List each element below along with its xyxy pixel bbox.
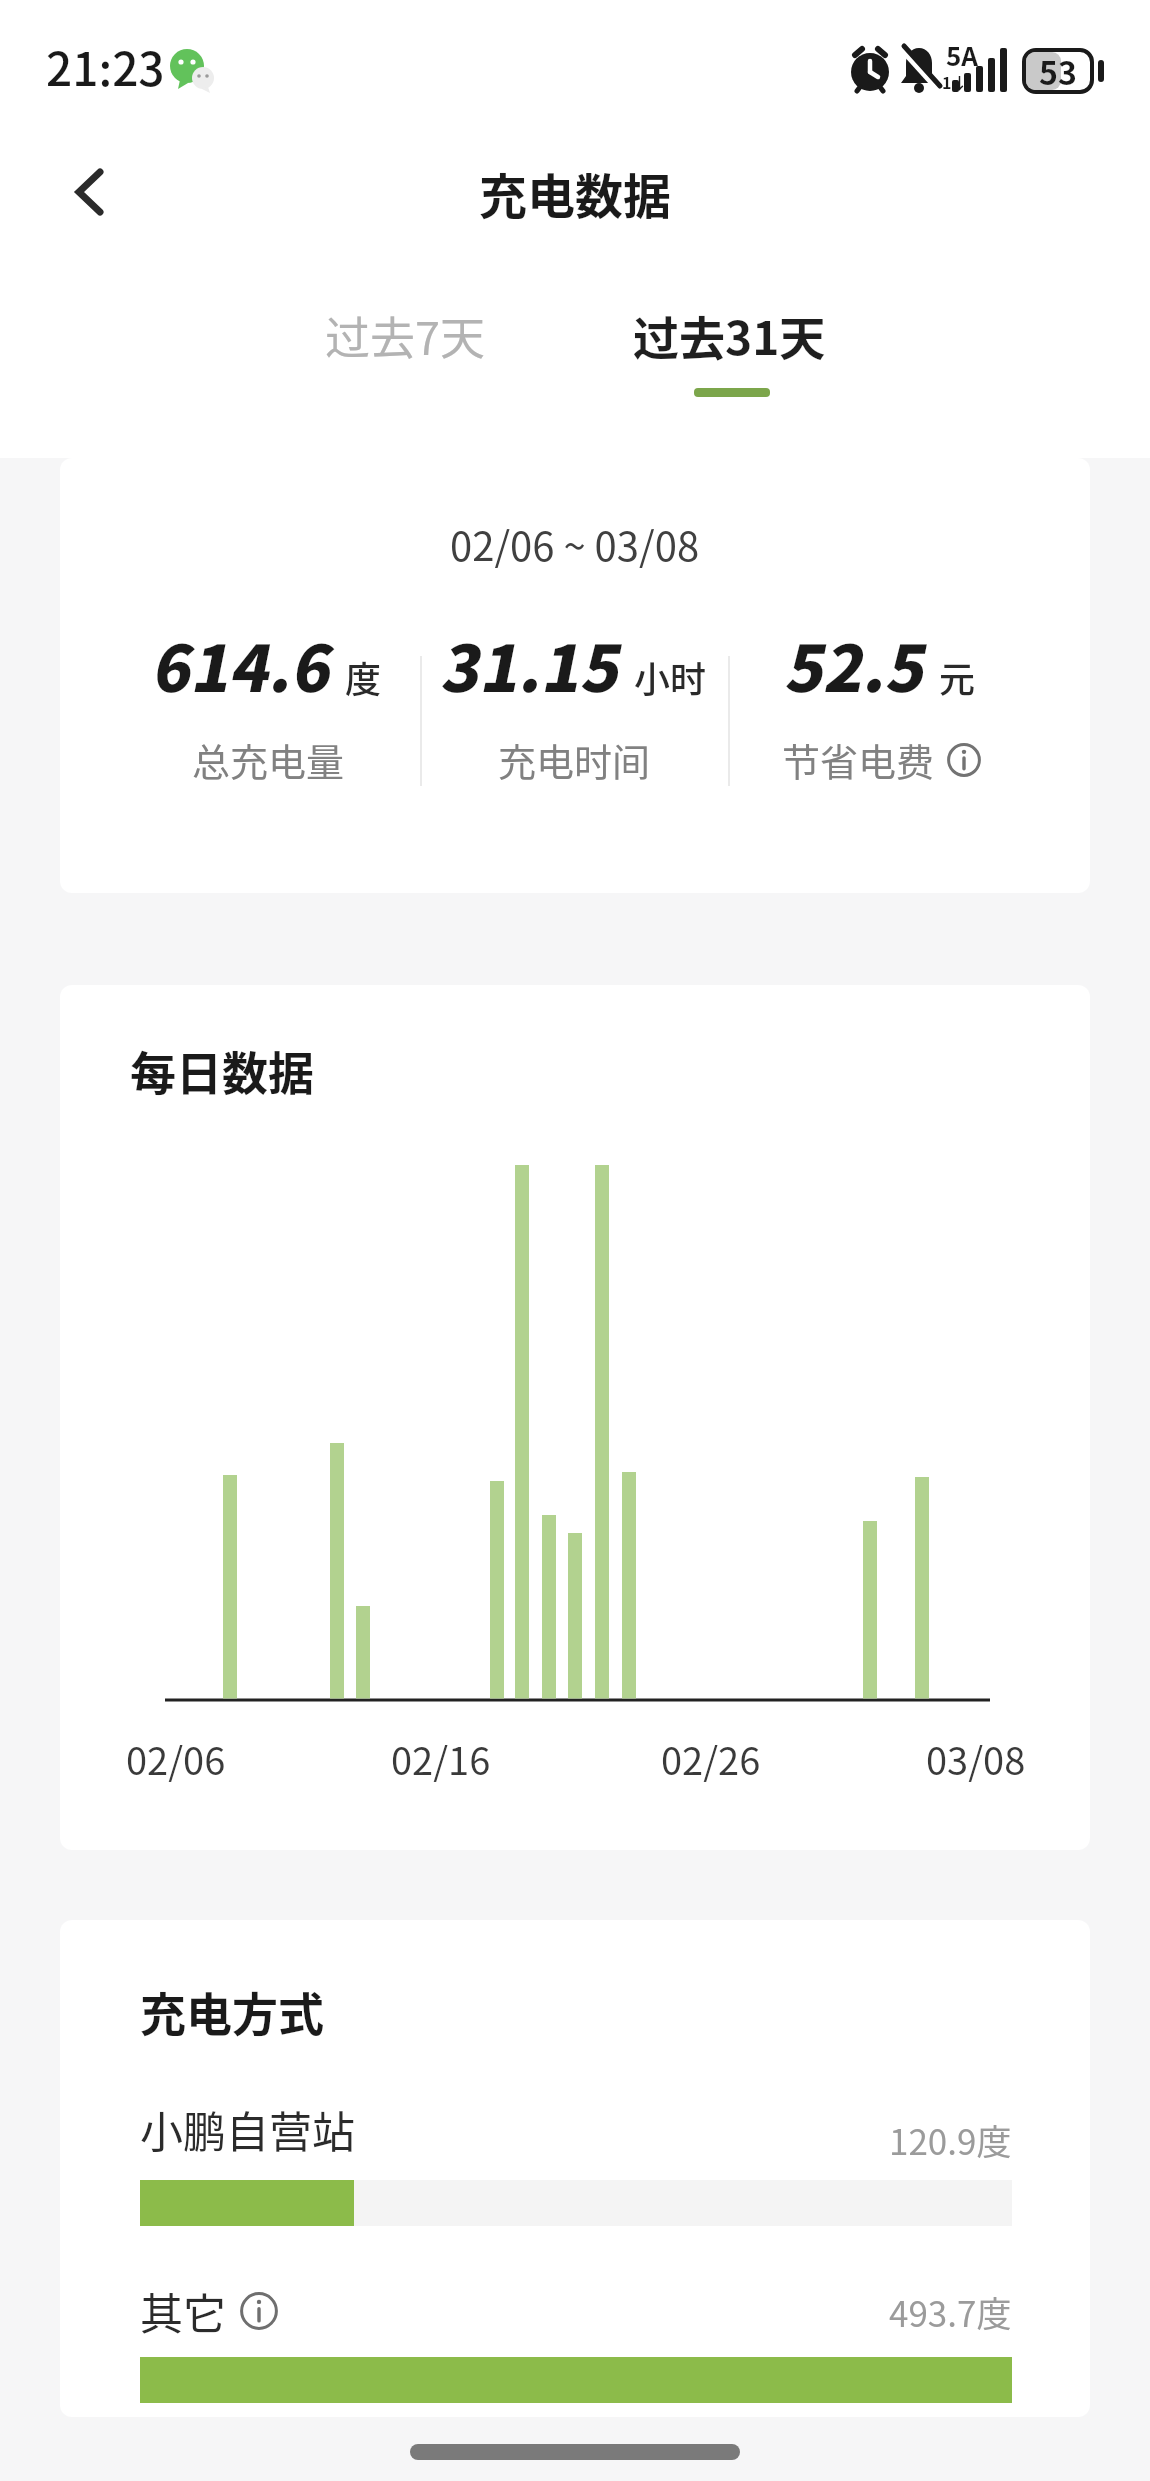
- staticText: 493.7度: [889, 2286, 1012, 2337]
- staticText: 小时: [634, 651, 707, 703]
- staticText: 614.6: [154, 618, 333, 710]
- staticText: 充电数据: [479, 158, 672, 222]
- button[interactable]: 过去31天: [633, 302, 826, 369]
- staticText: 元: [939, 651, 976, 703]
- staticText: 120.9度: [889, 2114, 1012, 2165]
- staticText: 充电方式: [140, 1978, 324, 2045]
- staticText: 每日数据: [130, 1037, 314, 1104]
- staticText: 03/08: [926, 1731, 1026, 1786]
- staticText: 节省电费: [782, 732, 935, 787]
- staticText: 过去31天: [633, 302, 826, 369]
- staticText: 21:23: [46, 33, 165, 89]
- staticText: 02/06 ~ 03/08: [450, 515, 700, 571]
- staticText: 02/26: [661, 1731, 761, 1786]
- staticText: 总充电量: [192, 732, 345, 787]
- button[interactable]: [50, 152, 130, 232]
- staticText: 1↓: [942, 70, 968, 93]
- staticText: 充电时间: [498, 732, 651, 787]
- staticText: 31.15: [443, 618, 622, 710]
- staticText: 02/06: [126, 1731, 226, 1786]
- staticText: 过去7天: [325, 303, 485, 368]
- staticText: 53: [1039, 48, 1077, 94]
- staticText: 5A: [946, 36, 979, 74]
- button[interactable]: 过去7天: [325, 303, 485, 368]
- staticText: 度: [345, 651, 382, 703]
- staticText: 其它: [140, 2280, 226, 2342]
- staticText: 52.5: [787, 618, 927, 710]
- staticText: 02/16: [391, 1731, 491, 1786]
- button[interactable]: [240, 2292, 278, 2330]
- staticText: 小鹏自营站: [140, 2098, 355, 2160]
- button[interactable]: [947, 743, 981, 777]
